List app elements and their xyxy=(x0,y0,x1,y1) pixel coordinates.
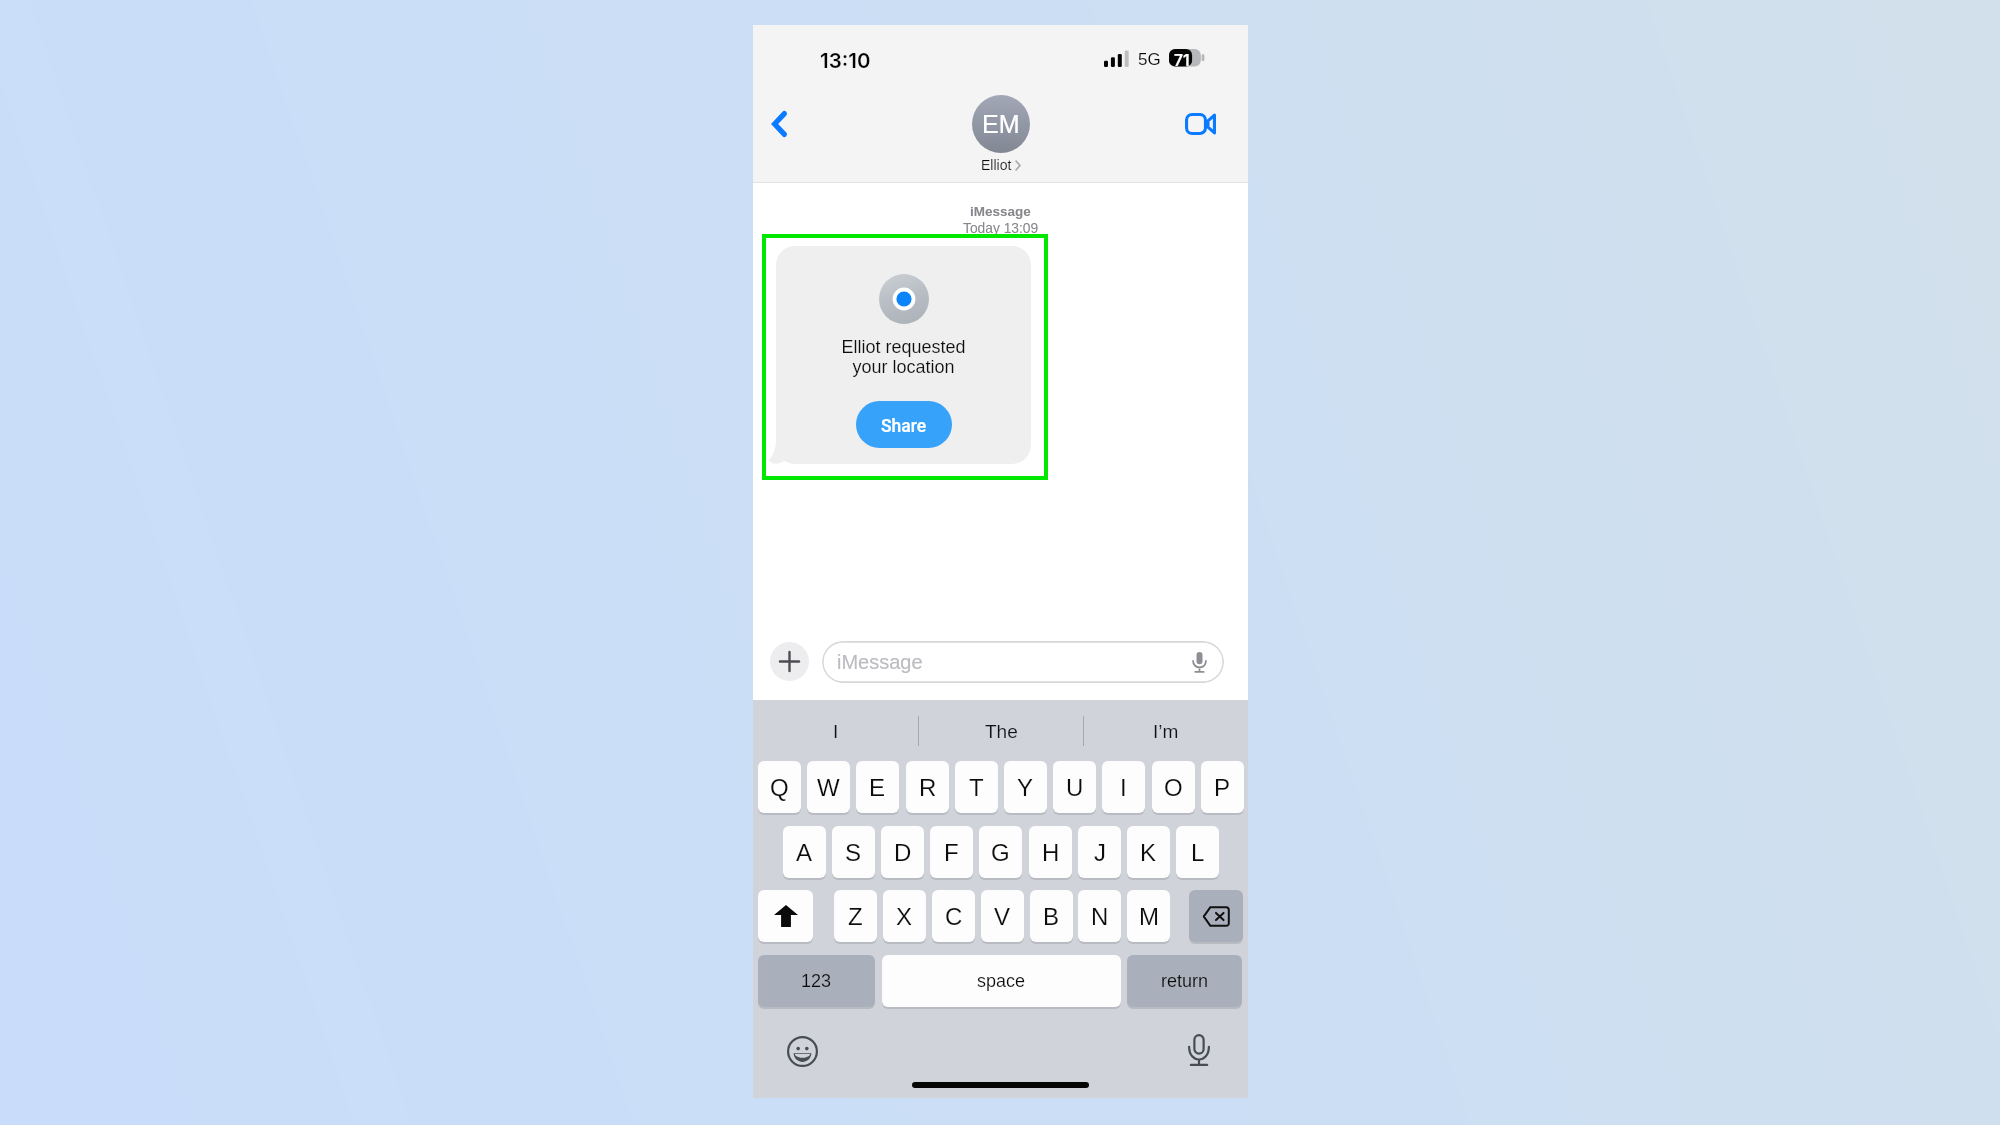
staticText: Today 13:09 xyxy=(963,221,1039,236)
staticText: T xyxy=(969,774,984,801)
button[interactable]: Emoji keyboard xyxy=(787,1036,818,1067)
staticText: C xyxy=(945,903,963,930)
staticText: G xyxy=(991,839,1010,866)
button[interactable]: L xyxy=(1176,826,1219,880)
staticText: Elliot requested your location xyxy=(841,337,966,377)
staticText: Q xyxy=(770,774,789,801)
button[interactable]: C xyxy=(932,890,975,944)
staticText: N xyxy=(1091,903,1109,930)
button[interactable]: Q xyxy=(758,761,801,815)
button[interactable]: I xyxy=(753,702,918,760)
button[interactable]: O xyxy=(1152,761,1195,815)
button[interactable]: A xyxy=(783,826,826,880)
staticText: P xyxy=(1214,774,1231,801)
staticText: M xyxy=(1139,903,1159,930)
staticText: 123 xyxy=(801,971,832,991)
button[interactable]: P xyxy=(1201,761,1244,815)
staticText: V xyxy=(994,903,1011,930)
button[interactable]: FaceTime video call xyxy=(1180,105,1220,143)
staticText: U xyxy=(1066,774,1084,801)
button[interactable]: Dictation xyxy=(1188,1034,1210,1066)
staticText: The xyxy=(985,721,1018,742)
button[interactable]: T xyxy=(955,761,998,815)
staticText: S xyxy=(845,839,862,866)
staticText: 5G xyxy=(1138,50,1161,69)
button[interactable]: B xyxy=(1030,890,1073,944)
button[interactable]: Back xyxy=(758,101,800,147)
button[interactable]: D xyxy=(881,826,924,880)
staticText: 13:10 xyxy=(820,48,871,73)
button[interactable]: R xyxy=(906,761,949,815)
button[interactable]: G xyxy=(979,826,1022,880)
button[interactable]: U xyxy=(1053,761,1096,815)
button[interactable] xyxy=(1189,890,1243,944)
staticText: Elliot xyxy=(981,157,1012,173)
button[interactable]: Elliot requested your location xyxy=(776,246,1031,464)
button[interactable]: The xyxy=(919,702,1083,760)
button[interactable]: Z xyxy=(834,890,877,944)
button[interactable]: H xyxy=(1029,826,1072,880)
staticText: O xyxy=(1164,774,1183,801)
button[interactable]: X xyxy=(883,890,926,944)
button[interactable]: S xyxy=(832,826,875,880)
staticText: X xyxy=(896,903,913,930)
staticText: 71 xyxy=(1174,51,1190,70)
button[interactable]: N xyxy=(1078,890,1121,944)
staticText: I xyxy=(833,721,839,742)
button[interactable]: I’m xyxy=(1084,702,1248,760)
staticText: I’m xyxy=(1153,721,1179,742)
button[interactable]: J xyxy=(1078,826,1121,880)
staticText: iMessage xyxy=(970,204,1031,219)
button[interactable]: V xyxy=(981,890,1024,944)
button[interactable]: W xyxy=(807,761,850,815)
staticText: I xyxy=(1120,774,1127,801)
button[interactable]: I xyxy=(1102,761,1145,815)
staticText: EM xyxy=(982,110,1020,138)
staticText: K xyxy=(1140,839,1157,866)
button[interactable]: iMessage xyxy=(822,641,1224,683)
staticText: W xyxy=(817,774,840,801)
staticText: D xyxy=(894,839,912,866)
button[interactable] xyxy=(758,890,813,944)
button[interactable]: F xyxy=(930,826,973,880)
staticText: R xyxy=(919,774,937,801)
staticText: B xyxy=(1043,903,1060,930)
staticText: Y xyxy=(1017,774,1034,801)
button[interactable]: space xyxy=(882,955,1121,1009)
button[interactable]: 123 xyxy=(758,955,875,1009)
button[interactable]: Share xyxy=(856,401,952,448)
button[interactable]: return xyxy=(1127,955,1242,1009)
staticText: space xyxy=(977,971,1026,991)
staticText: iMessage xyxy=(837,651,923,673)
button[interactable]: M xyxy=(1127,890,1170,944)
staticText: L xyxy=(1191,839,1205,866)
button[interactable]: E xyxy=(856,761,899,815)
staticText: return xyxy=(1161,971,1209,991)
staticText: E xyxy=(869,774,886,801)
staticText: H xyxy=(1042,839,1060,866)
staticText: Share xyxy=(881,416,927,437)
staticText: Z xyxy=(848,903,863,930)
button[interactable]: Add attachment xyxy=(770,642,809,681)
staticText: A xyxy=(796,839,813,866)
button[interactable]: K xyxy=(1127,826,1170,880)
button[interactable]: EM xyxy=(953,95,1048,177)
button[interactable]: Y xyxy=(1004,761,1047,815)
staticText: J xyxy=(1094,839,1106,866)
staticText: F xyxy=(944,839,959,866)
